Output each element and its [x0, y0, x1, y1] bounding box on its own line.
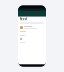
button[interactable]: Feed: [20, 17, 27, 21]
button[interactable]: Conversation: [20, 26, 44, 29]
staticText: Feed: [20, 17, 27, 21]
